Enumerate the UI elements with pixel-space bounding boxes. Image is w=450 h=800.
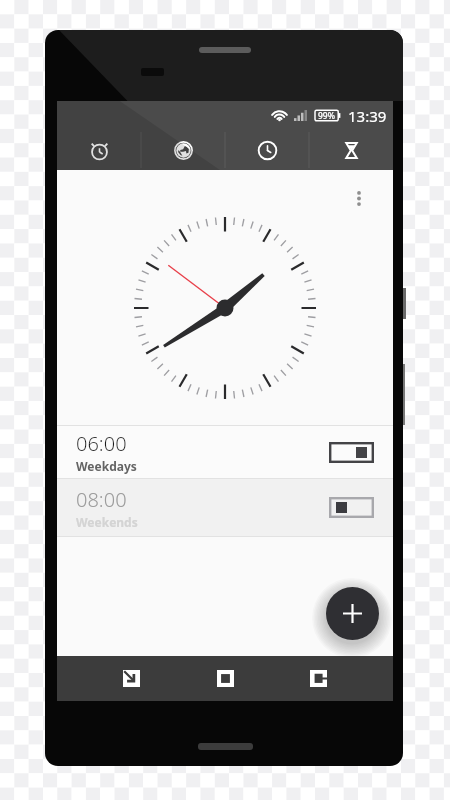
button[interactable]: World clock (141, 130, 225, 170)
button[interactable]: Add alarm (326, 587, 379, 640)
button[interactable]: Home (203, 656, 247, 700)
button[interactable]: Alarm off (329, 497, 374, 518)
button[interactable]: 08:00 (57, 479, 393, 536)
button[interactable]: Back (109, 656, 153, 700)
staticText: Weekdays (76, 458, 137, 474)
button[interactable]: More options (345, 184, 373, 212)
button[interactable]: Alarm (57, 130, 141, 170)
staticText: 08:00 (76, 486, 127, 513)
button[interactable]: Stopwatch (225, 130, 309, 170)
staticText: 13:39 (348, 106, 387, 126)
staticText: 06:00 (76, 430, 127, 457)
staticText: Weekends (76, 514, 138, 530)
button[interactable]: Recents (296, 656, 340, 700)
button[interactable]: Alarm on (329, 442, 374, 463)
button[interactable]: Timer (309, 130, 393, 170)
button[interactable]: 06:00 (57, 426, 393, 478)
staticText: 99% (318, 110, 335, 122)
